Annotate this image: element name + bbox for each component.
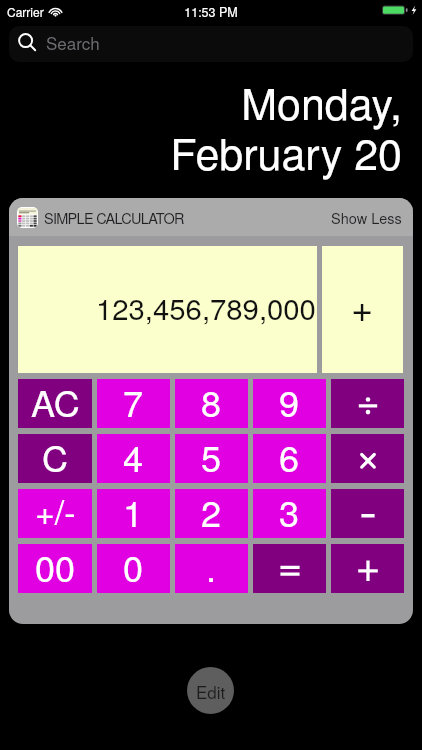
staticText: 5 — [201, 431, 222, 480]
button[interactable]: Search — [9, 26, 413, 62]
button[interactable]: − — [331, 489, 404, 538]
staticText: 0 — [123, 541, 144, 590]
button[interactable]: × — [331, 434, 404, 483]
staticText: 123,456,789,000 — [96, 286, 316, 328]
button[interactable]: 3 — [253, 489, 326, 538]
button[interactable]: 00 — [18, 544, 92, 593]
button[interactable]: 2 — [175, 489, 248, 538]
staticText: Monday, February 20 — [0, 71, 402, 182]
staticText: 9 — [279, 376, 300, 425]
staticText: . — [206, 541, 217, 590]
staticText: 7 — [123, 376, 144, 425]
staticText: Show Less — [331, 207, 402, 228]
button[interactable]: . — [175, 544, 248, 593]
button[interactable]: 5 — [175, 434, 248, 483]
staticText: 3 — [279, 486, 300, 535]
staticText: Search — [46, 30, 100, 54]
button[interactable]: + — [331, 544, 404, 593]
staticText: 1 — [123, 486, 144, 535]
button[interactable]: Edit — [187, 667, 234, 714]
button[interactable]: 4 — [97, 434, 170, 483]
staticText: 6 — [279, 431, 300, 480]
staticText: +/- — [35, 486, 76, 535]
button[interactable]: 7 — [97, 379, 170, 428]
button[interactable]: 9 — [253, 379, 326, 428]
staticText: Edit — [196, 679, 226, 703]
staticText: 11:53 PM — [0, 3, 422, 21]
button[interactable]: +/- — [18, 489, 92, 538]
staticText: 8 — [201, 376, 222, 425]
button[interactable]: C — [18, 434, 92, 483]
staticText: 2 — [201, 486, 222, 535]
staticText: SIMPLE CALCULATOR — [44, 207, 184, 228]
button[interactable]: 8 — [175, 379, 248, 428]
staticText: Carrier — [7, 3, 44, 20]
button[interactable]: Show Less — [320, 199, 413, 236]
button[interactable]: 1 — [97, 489, 170, 538]
staticText: + — [351, 278, 374, 332]
button[interactable]: 6 — [253, 434, 326, 483]
button[interactable]: ÷ — [331, 379, 404, 428]
staticText: AC — [31, 376, 80, 425]
staticText: C — [42, 431, 68, 480]
staticText: 4 — [123, 431, 144, 480]
button[interactable]: 0 — [97, 544, 170, 593]
button[interactable]: AC — [18, 379, 92, 428]
staticText: 00 — [35, 541, 76, 590]
button[interactable]: = — [253, 544, 326, 593]
